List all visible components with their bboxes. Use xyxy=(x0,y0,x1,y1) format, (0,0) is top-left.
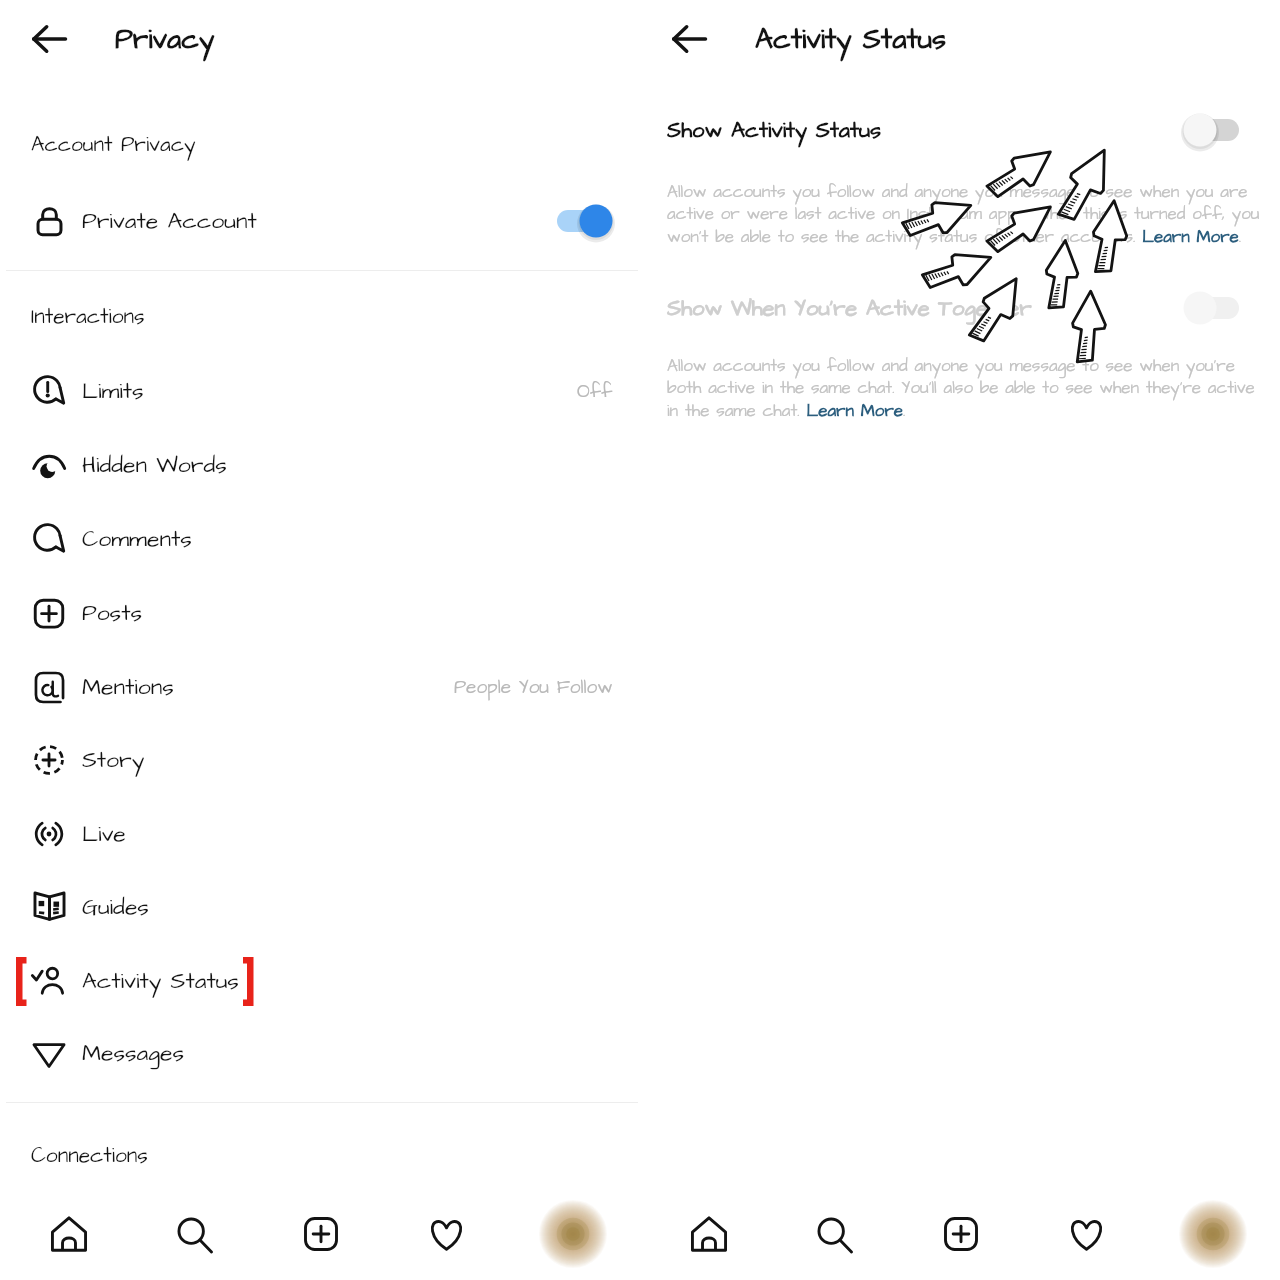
staticText: Limits xyxy=(82,375,144,407)
button[interactable]: Create xyxy=(287,1200,355,1268)
button[interactable]: Show When You're Active Together xyxy=(640,286,1280,330)
staticText: Account Privacy xyxy=(31,130,196,159)
staticText: Posts xyxy=(82,597,142,629)
staticText: Story xyxy=(82,744,145,776)
button[interactable]: Activity xyxy=(412,1200,480,1268)
button[interactable]: Show Activity Status xyxy=(640,108,1280,152)
staticText: Hidden Words xyxy=(82,449,227,481)
button[interactable]: Live xyxy=(0,797,640,870)
staticText: People You Follow xyxy=(454,674,613,700)
button[interactable]: Search xyxy=(160,1200,228,1268)
button[interactable]: Turn on xyxy=(1183,290,1241,326)
staticText: Allow accounts you follow and anyone you… xyxy=(667,354,1266,423)
button[interactable]: Private Account xyxy=(0,184,640,257)
button[interactable]: Back xyxy=(17,17,81,61)
button[interactable]: Mentions xyxy=(0,650,640,723)
staticText: Allow accounts you follow and anyone you… xyxy=(667,180,1266,249)
staticText: Show Activity Status xyxy=(667,115,882,146)
button[interactable]: Guides xyxy=(0,870,640,943)
button[interactable]: Limits xyxy=(0,354,640,428)
staticText: Privacy xyxy=(115,20,215,59)
staticText: Interactions xyxy=(31,302,145,331)
staticText: Activity Status xyxy=(755,20,947,59)
button[interactable]: Search xyxy=(800,1200,868,1268)
staticText: Guides xyxy=(82,891,149,923)
button[interactable]: Home xyxy=(675,1200,743,1268)
button[interactable]: Activity xyxy=(1052,1200,1120,1268)
button[interactable]: Profile xyxy=(539,1200,607,1268)
staticText: Live xyxy=(82,818,126,850)
staticText: Activity Status xyxy=(82,965,239,997)
staticText: Private Account xyxy=(82,205,257,237)
button[interactable]: Story xyxy=(0,723,640,797)
staticText: Messages xyxy=(82,1037,185,1069)
staticText: Off xyxy=(577,378,613,404)
button[interactable]: Profile xyxy=(1179,1200,1247,1268)
button[interactable]: Home xyxy=(35,1200,103,1268)
button[interactable]: Posts xyxy=(0,576,640,650)
staticText: Mentions xyxy=(82,671,174,703)
button[interactable]: Turn on xyxy=(1183,112,1241,148)
button[interactable]: Turn off xyxy=(555,203,613,239)
button[interactable]: Hidden Words xyxy=(0,428,640,502)
button[interactable]: Back xyxy=(657,17,721,61)
staticText: Connections xyxy=(31,1141,148,1170)
staticText: Show When You're Active Together xyxy=(667,293,1032,324)
button[interactable]: Comments xyxy=(0,502,640,576)
staticText: Comments xyxy=(82,523,192,555)
button[interactable]: Create xyxy=(927,1200,995,1268)
button[interactable]: Messages xyxy=(0,1018,640,1087)
button[interactable]: Activity Status xyxy=(0,943,640,1018)
